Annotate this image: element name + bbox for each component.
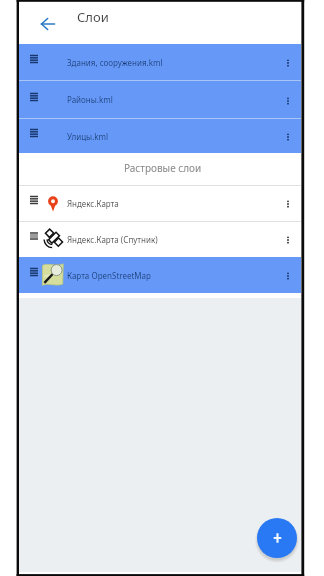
button[interactable]: More options xyxy=(278,91,298,111)
staticText: Яндекс.Карта xyxy=(67,198,119,209)
button[interactable]: More options xyxy=(278,127,298,147)
button[interactable]: More options xyxy=(278,194,298,214)
staticText: Слои xyxy=(77,8,109,26)
staticText: Здания, сооружения.kml xyxy=(67,57,163,68)
button[interactable]: Add layer xyxy=(257,518,297,558)
button[interactable]: More options xyxy=(278,230,298,250)
staticText: Растровые слои xyxy=(124,161,202,175)
button[interactable]: Районы.kml xyxy=(19,81,301,118)
staticText: Улицы.kml xyxy=(67,131,109,142)
staticText: Карта OpenStreetMap xyxy=(67,270,152,281)
button[interactable]: Яндекс.Карта (Спутник) xyxy=(19,221,301,257)
staticText: Яндекс.Карта (Спутник) xyxy=(67,234,158,245)
button[interactable]: Яндекс.Карта xyxy=(19,185,301,221)
button[interactable]: More options xyxy=(278,266,298,286)
button[interactable]: Здания, сооружения.kml xyxy=(19,44,301,80)
button[interactable]: Карта OpenStreetMap xyxy=(19,257,301,293)
button[interactable]: Back xyxy=(30,6,66,42)
button[interactable]: More options xyxy=(278,53,298,73)
staticText: Районы.kml xyxy=(67,94,113,105)
button[interactable]: Улицы.kml xyxy=(19,119,301,153)
